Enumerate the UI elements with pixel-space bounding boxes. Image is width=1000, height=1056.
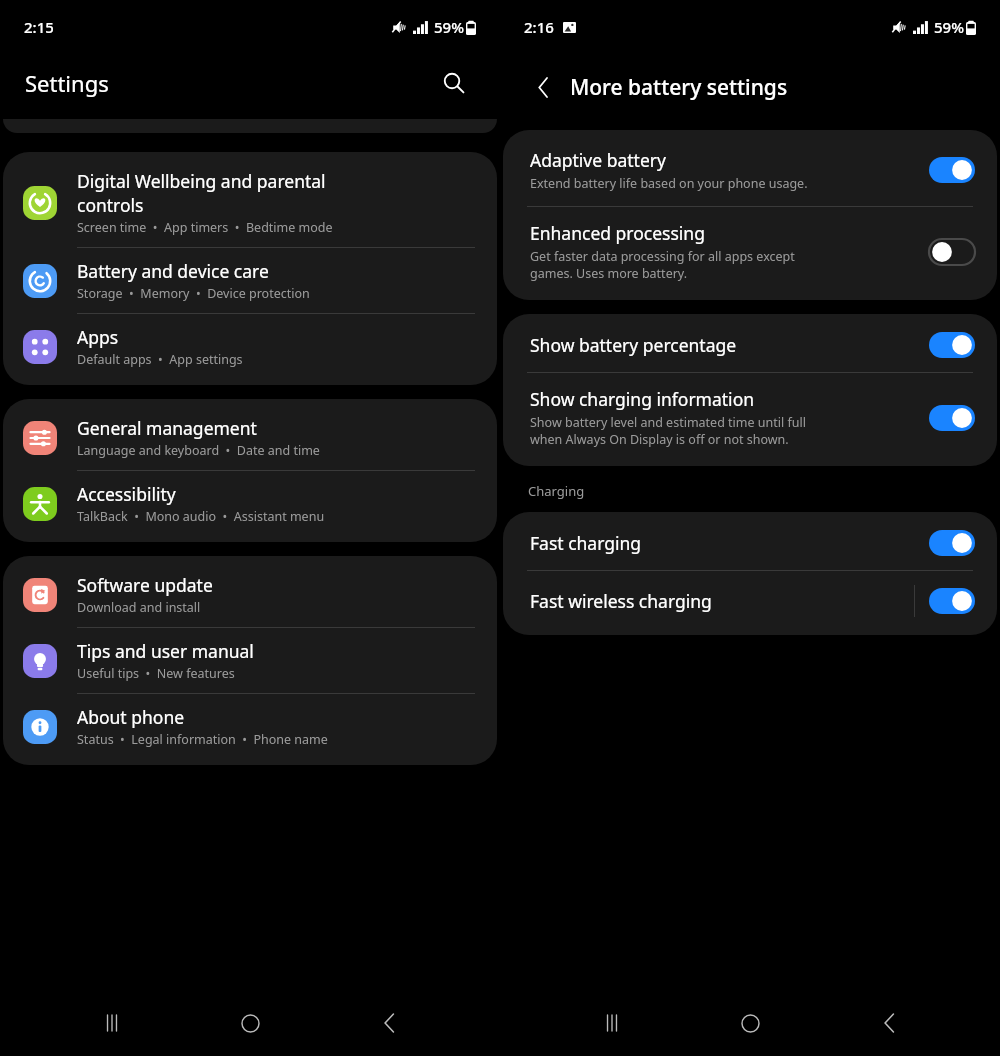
staticText: Storage • Memory • Device protection <box>77 285 310 302</box>
button[interactable]: Toggle on <box>929 588 975 614</box>
staticText: Show battery percentage <box>530 333 737 357</box>
button[interactable]: Adaptive battery <box>503 134 997 207</box>
staticText: Charging <box>528 482 585 500</box>
staticText: Enhanced processing <box>530 221 705 245</box>
button[interactable]: Recents <box>85 996 139 1050</box>
staticText: Digital Wellbeing and parental controls <box>77 169 326 217</box>
button[interactable]: Back <box>862 996 916 1050</box>
staticText: 59% <box>434 17 464 37</box>
button[interactable]: Battery and device care <box>3 248 497 314</box>
button[interactable]: Home <box>723 996 777 1050</box>
button[interactable]: Back <box>362 996 416 1050</box>
button[interactable]: General management <box>3 405 497 471</box>
staticText: Battery and device care <box>77 259 269 283</box>
staticText: Software update <box>77 573 213 597</box>
staticText: Tips and user manual <box>77 639 254 663</box>
button[interactable]: Apps <box>3 314 497 379</box>
staticText: Adaptive battery <box>530 148 666 172</box>
button[interactable]: Show charging information <box>503 373 997 462</box>
staticText: General management <box>77 416 257 440</box>
button[interactable]: Tips and user manual <box>3 628 497 694</box>
button[interactable]: Toggle on <box>929 157 975 183</box>
button[interactable]: Enhanced processing <box>503 207 997 296</box>
button[interactable]: Show battery percentage <box>503 318 997 373</box>
staticText: 59% <box>934 17 964 37</box>
button[interactable]: Home <box>223 996 277 1050</box>
button[interactable]: About phone <box>3 694 497 759</box>
staticText: Extend battery life based on your phone … <box>530 175 808 192</box>
button[interactable]: Accessibility <box>3 471 497 536</box>
staticText: 2:16 <box>524 17 554 37</box>
button[interactable]: Fast wireless charging <box>503 571 997 631</box>
button[interactable]: Software update <box>3 562 497 628</box>
staticText: More battery settings <box>570 73 788 102</box>
staticText: Download and install <box>77 599 201 616</box>
button[interactable]: Toggle off <box>929 239 975 265</box>
button[interactable]: Back <box>526 70 560 104</box>
button[interactable]: Toggle on <box>929 530 975 556</box>
staticText: Screen time • App timers • Bedtime mode <box>77 219 333 236</box>
staticText: 2:15 <box>24 17 54 37</box>
button[interactable]: Recents <box>585 996 639 1050</box>
button[interactable]: Toggle on <box>929 405 975 431</box>
button[interactable]: Toggle on <box>929 332 975 358</box>
staticText: Show charging information <box>530 387 755 411</box>
staticText: Accessibility <box>77 482 176 506</box>
staticText: Language and keyboard • Date and time <box>77 442 320 459</box>
button[interactable]: Search <box>434 63 474 103</box>
staticText: Fast wireless charging <box>530 589 712 613</box>
staticText: Fast charging <box>530 531 642 555</box>
button[interactable]: Digital Wellbeing and parental controls <box>3 158 497 248</box>
staticText: Apps <box>77 325 119 349</box>
staticText: Show battery level and estimated time un… <box>530 414 806 448</box>
staticText: Status • Legal information • Phone name <box>77 731 328 748</box>
button[interactable]: Fast charging <box>503 516 997 571</box>
staticText: TalkBack • Mono audio • Assistant menu <box>77 508 325 525</box>
staticText: Useful tips • New features <box>77 665 235 682</box>
staticText: Settings <box>25 68 109 98</box>
staticText: Get faster data processing for all apps … <box>530 248 795 282</box>
staticText: About phone <box>77 705 185 729</box>
staticText: Default apps • App settings <box>77 351 243 368</box>
